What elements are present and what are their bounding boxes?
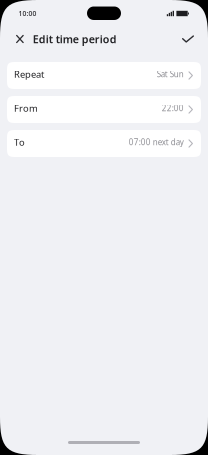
staticText: From <box>14 102 38 114</box>
staticText: 10:00 <box>18 9 36 18</box>
button[interactable]: Repeat <box>7 62 201 89</box>
staticText: 07:00 next day <box>129 137 184 147</box>
button[interactable]: Save <box>172 28 208 50</box>
staticText: 22:00 <box>162 103 184 113</box>
staticText: Repeat <box>14 68 44 80</box>
button[interactable]: From <box>7 96 201 123</box>
staticText: Sat Sun <box>157 69 184 79</box>
button[interactable]: To <box>7 130 201 157</box>
button[interactable]: Edit time period <box>0 28 123 50</box>
staticText: To <box>14 136 25 148</box>
staticText: Edit time period <box>33 32 117 46</box>
